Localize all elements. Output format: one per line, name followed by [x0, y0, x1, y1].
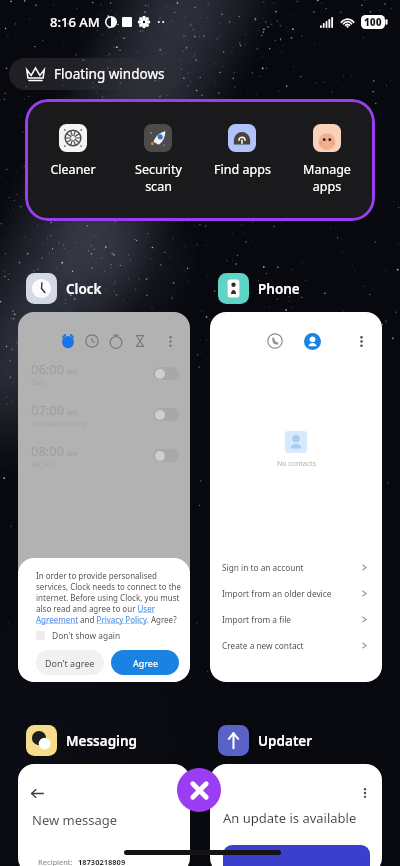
button[interactable]: Manage apps	[286, 124, 368, 194]
staticText: Recipient:	[38, 857, 73, 866]
staticText: 06:00	[31, 360, 65, 378]
staticText: 100	[364, 15, 382, 29]
button[interactable]: Cleaner	[32, 124, 114, 178]
button[interactable]: Messaging	[26, 725, 137, 756]
button[interactable]: 06:00	[18, 312, 190, 682]
button[interactable]: New message	[18, 764, 190, 866]
staticText: 08:00	[31, 442, 65, 460]
button[interactable]: Security scan	[117, 124, 199, 194]
staticText: Manage apps	[303, 161, 351, 194]
staticText: No contacts	[277, 459, 316, 469]
staticText: Monday to Friday	[31, 419, 87, 428]
staticText: Create a new contact	[222, 640, 304, 651]
button[interactable]: Sign in to an account	[222, 554, 369, 580]
button[interactable]: Clock	[26, 273, 102, 304]
button[interactable]: Create a new contact	[222, 632, 369, 658]
staticText: Find apps	[214, 161, 271, 178]
button[interactable]: Updater	[218, 725, 313, 756]
staticText: Messaging	[66, 732, 137, 750]
staticText: Agree	[133, 657, 158, 669]
staticText: 18730218809	[78, 857, 126, 866]
staticText: Clock	[66, 280, 102, 298]
staticText: Daily	[31, 378, 47, 387]
staticText: Security scan	[135, 161, 182, 194]
button[interactable]: An update is available	[210, 764, 382, 866]
staticText: Phone	[258, 280, 300, 298]
staticText: Floating windows	[54, 65, 165, 83]
staticText: Cleaner	[50, 161, 96, 178]
button[interactable]: Floating windows	[9, 58, 182, 90]
staticText: In order to provide personalised service…	[36, 570, 182, 625]
staticText: Don't show again	[52, 630, 121, 641]
button[interactable]: No contacts	[210, 312, 382, 682]
button[interactable]: Import from an older device	[222, 580, 369, 606]
staticText: Import from a file	[222, 614, 291, 625]
staticText: 07:00	[31, 401, 65, 419]
staticText: 8:16 AM	[50, 13, 100, 31]
button[interactable]: Phone	[218, 273, 300, 304]
staticText: am	[67, 408, 77, 417]
button[interactable]: Close all	[177, 768, 221, 812]
button[interactable]: Don't agree	[36, 650, 104, 675]
staticText: Don't agree	[45, 657, 95, 669]
staticText: Updater	[258, 732, 313, 750]
staticText: Sat,Sun	[31, 460, 55, 469]
button[interactable]: Agree	[111, 650, 179, 675]
staticText: Sign in to an account	[222, 562, 304, 573]
button[interactable]: Find apps	[201, 124, 283, 178]
staticText: An update is available	[223, 809, 357, 827]
staticText: Import from an older device	[222, 588, 332, 599]
button[interactable]: Import from a file	[222, 606, 369, 632]
staticText: am	[67, 449, 77, 458]
staticText: New message	[32, 811, 118, 829]
staticText: am	[67, 367, 77, 376]
